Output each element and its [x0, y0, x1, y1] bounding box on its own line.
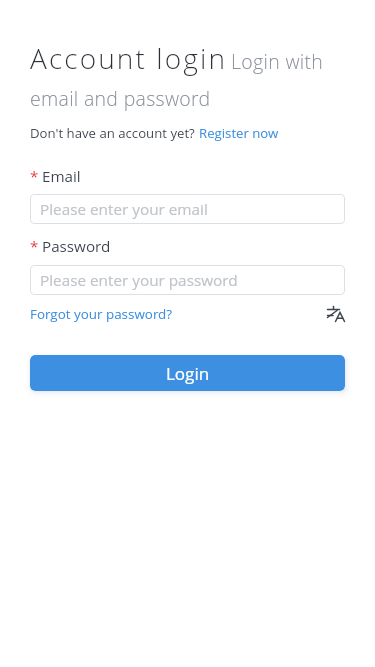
staticText: Password: [42, 236, 111, 257]
button[interactable]: Don't have an account yet?: [30, 124, 279, 142]
staticText: Account login: [30, 39, 228, 77]
staticText: Register now: [199, 124, 279, 142]
staticText: Email: [42, 166, 81, 187]
staticText: Please enter your password: [40, 270, 238, 291]
staticText: Please enter your email: [40, 199, 208, 220]
staticText: Don't have an account yet?: [30, 124, 199, 142]
staticText: *: [30, 236, 39, 256]
button[interactable]: [325, 304, 345, 324]
staticText: Login: [166, 362, 210, 385]
button[interactable]: Please enter your password: [30, 265, 345, 295]
staticText: *: [30, 166, 39, 186]
staticText: email and password: [30, 85, 211, 112]
button[interactable]: Please enter your email: [30, 194, 345, 224]
staticText: Login with: [231, 48, 324, 75]
button[interactable]: Forgot your password?: [30, 305, 173, 323]
button[interactable]: Login: [30, 355, 345, 391]
